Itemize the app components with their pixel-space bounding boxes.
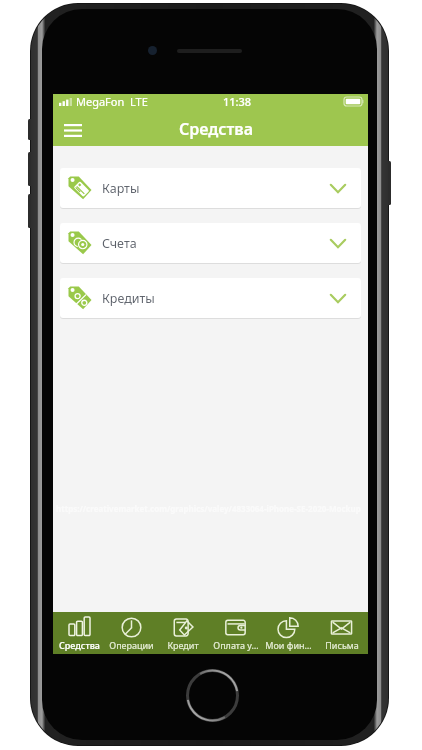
button[interactable]: Кредит (157, 612, 209, 654)
staticText: MegaFon (76, 94, 125, 109)
staticText: Средства (179, 118, 253, 140)
staticText: Операции (109, 639, 154, 651)
staticText: Письма (325, 639, 359, 651)
button[interactable]: Open navigation menu (53, 114, 93, 146)
button[interactable]: Карты (60, 168, 361, 208)
staticText: 11:38 (223, 94, 252, 109)
button[interactable]: Операции (105, 612, 157, 654)
button[interactable]: Письма (315, 612, 368, 654)
staticText: LTE (130, 94, 148, 109)
staticText: Мои фин… (265, 639, 312, 651)
staticText: Оплата у… (213, 639, 259, 651)
button[interactable]: Оплата у… (209, 612, 262, 654)
staticText: Кредит (167, 639, 199, 651)
staticText: Кредиты (102, 290, 155, 307)
button[interactable]: Средства (53, 612, 105, 654)
button[interactable]: Кредиты (60, 278, 361, 318)
button[interactable]: Счета (60, 223, 361, 263)
staticText: Средства (59, 639, 100, 651)
staticText: Карты (102, 180, 140, 197)
button[interactable]: Мои фин… (262, 612, 315, 654)
staticText: Счета (102, 235, 137, 252)
